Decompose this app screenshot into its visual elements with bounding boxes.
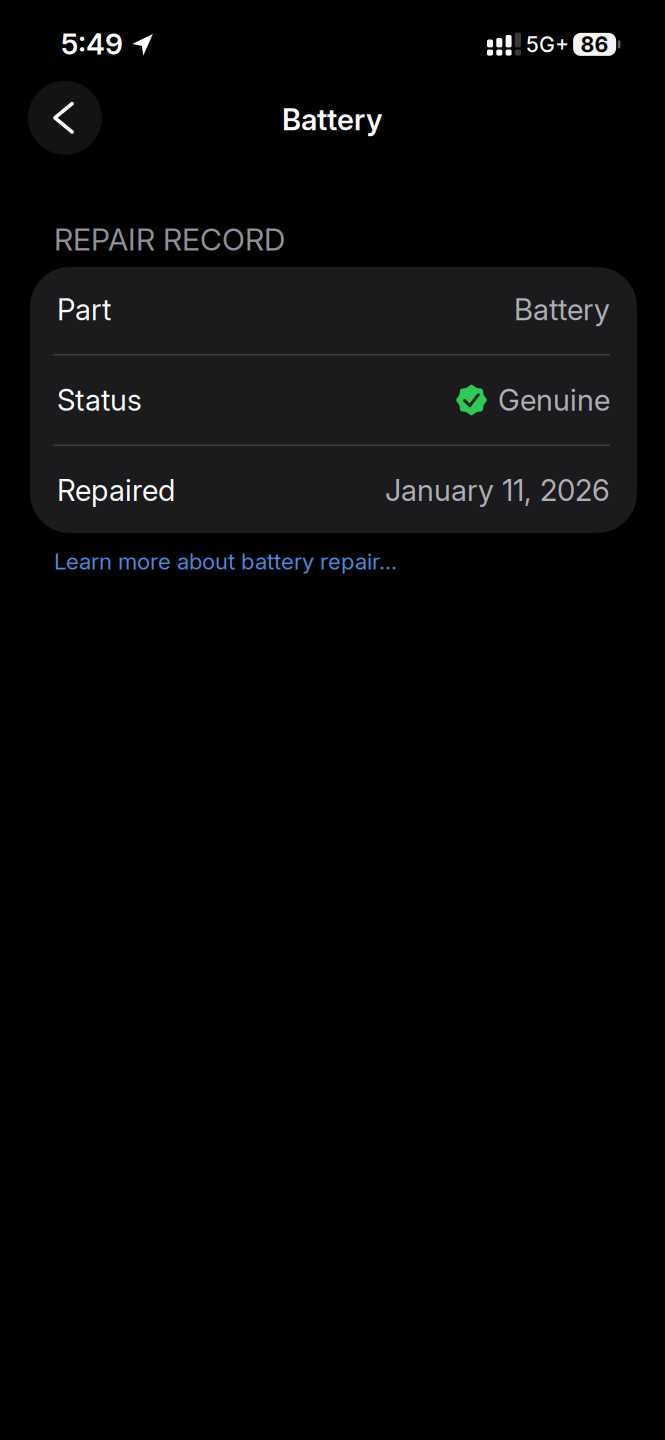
staticText: Repaired	[57, 473, 175, 508]
button[interactable]: Repaired	[30, 446, 637, 535]
button[interactable]: Learn more about battery repair...	[54, 539, 454, 584]
staticText: Learn more about battery repair...	[54, 548, 397, 575]
staticText: Battery	[282, 102, 383, 137]
staticText: 5:49	[61, 27, 123, 61]
staticText: 5G+	[526, 31, 569, 57]
staticText: Battery	[514, 292, 610, 327]
button[interactable]: Back	[28, 81, 102, 155]
staticText: Status	[57, 382, 142, 418]
button[interactable]: Part	[30, 265, 637, 354]
staticText: REPAIR RECORD	[54, 221, 285, 258]
staticText: Genuine	[498, 382, 610, 418]
staticText: 86	[581, 31, 609, 57]
staticText: January 11, 2026	[385, 473, 610, 508]
button[interactable]: Status	[30, 356, 637, 444]
staticText: Part	[57, 292, 111, 327]
